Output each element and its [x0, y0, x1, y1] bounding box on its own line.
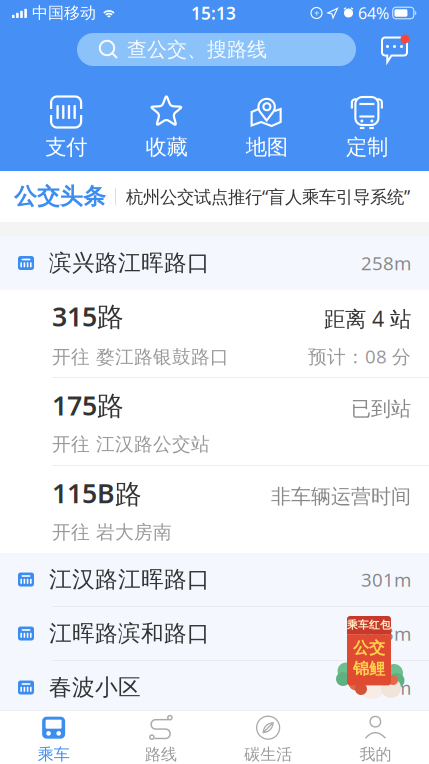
staticText: 公交: [353, 638, 385, 658]
button[interactable]: 公交头条: [0, 171, 429, 222]
button[interactable]: 收藏: [116, 95, 216, 160]
button[interactable]: 江汉路江晖路口: [0, 553, 429, 607]
staticText: 175路: [52, 387, 124, 423]
staticText: 锦鲤: [353, 659, 385, 678]
button[interactable]: 定制: [317, 95, 417, 160]
staticText: 乘车: [38, 745, 70, 764]
staticText: 已到站: [351, 396, 411, 421]
staticText: 301m: [361, 567, 411, 592]
staticText: 258m: [361, 251, 411, 275]
staticText: 杭州公交试点推行“盲人乘车引导系统”: [126, 185, 410, 208]
staticText: 15:13: [191, 1, 236, 24]
staticText: 我的: [359, 745, 391, 764]
staticText: 115B路: [52, 475, 142, 511]
staticText: 非车辆运营时间: [271, 484, 411, 509]
staticText: 64%: [358, 2, 389, 24]
staticText: 路线: [145, 745, 177, 764]
button[interactable]: 乘车: [0, 707, 107, 764]
button[interactable]: 115B路: [0, 466, 429, 553]
staticText: +: [314, 7, 319, 19]
staticText: 开往 岩大房南: [52, 521, 172, 544]
button[interactable]: 查公交、搜路线: [77, 33, 356, 66]
button[interactable]: 路线: [107, 707, 214, 764]
staticText: 收藏: [145, 134, 187, 160]
staticText: 开往 江汉路公交站: [52, 433, 210, 456]
staticText: 江晖路滨和路口: [49, 620, 210, 647]
button[interactable]: 春波小区: [0, 661, 429, 715]
staticText: 地图: [246, 134, 288, 160]
button[interactable]: 碳生活: [214, 707, 322, 764]
staticText: 查公交、搜路线: [127, 37, 267, 62]
button[interactable]: 我的: [322, 707, 429, 764]
staticText: 预计：08 分: [308, 344, 411, 369]
button[interactable]: 地图: [216, 95, 317, 160]
button[interactable]: 滨兴路江晖路口: [0, 236, 429, 290]
staticText: 中国移动: [32, 3, 96, 23]
button[interactable]: 公交锦鲤活动: [321, 602, 417, 702]
staticText: 定制: [346, 134, 388, 160]
button[interactable]: 消息: [378, 33, 411, 65]
staticText: 392m: [361, 675, 411, 700]
button[interactable]: 江晖路滨和路口: [0, 607, 429, 661]
staticText: 支付: [45, 134, 87, 160]
staticText: 公交头条: [14, 183, 106, 210]
button[interactable]: 支付: [16, 95, 116, 160]
button[interactable]: 175路: [0, 378, 429, 466]
staticText: 江汉路江晖路口: [49, 566, 210, 593]
staticText: 315路: [52, 298, 124, 334]
button[interactable]: 315路: [0, 290, 429, 378]
staticText: 距离 4 站: [324, 304, 411, 333]
staticText: 293m: [361, 621, 411, 646]
staticText: 春波小区: [49, 674, 141, 701]
staticText: 滨兴路江晖路口: [49, 249, 210, 277]
staticText: 碳生活: [244, 745, 292, 764]
staticText: 乘车红包: [347, 618, 391, 632]
staticText: 开往 婺江路银鼓路口: [52, 345, 229, 368]
